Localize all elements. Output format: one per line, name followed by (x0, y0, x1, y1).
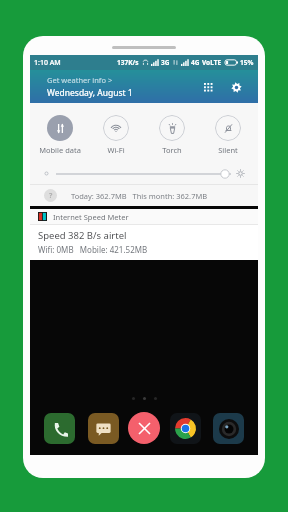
staticText: 1:10 AM (34, 58, 61, 68)
staticText: Today: 362.7MB This month: 362.7MB (71, 191, 208, 201)
staticText: Torch (162, 145, 182, 155)
button[interactable]: Messages (88, 413, 119, 444)
staticText: 3G (161, 58, 170, 67)
button[interactable]: Camera (213, 413, 244, 444)
staticText: Speed 382 B/s airtel (38, 229, 127, 242)
staticText: Internet Speed Meter (53, 212, 129, 222)
button[interactable]: Settings (228, 79, 244, 95)
staticText: Get weather info > (47, 75, 113, 85)
button[interactable]: Mobile data (34, 113, 86, 157)
button[interactable]: Brightness (56, 167, 231, 181)
staticText: Silent (218, 145, 238, 155)
staticText: VoLTE (202, 58, 222, 67)
staticText: 4G (191, 58, 200, 67)
button[interactable]: Torch (146, 113, 198, 157)
staticText: ? (49, 191, 53, 201)
staticText: Wednesday, August 1 (47, 87, 133, 99)
button[interactable]: Silent (202, 113, 254, 157)
button[interactable]: All settings (200, 79, 216, 95)
staticText: 137K/s (117, 58, 139, 67)
staticText: Wifi: 0MB Mobile: 421.52MB (38, 244, 148, 255)
button[interactable]: Wi-Fi (90, 113, 142, 157)
button[interactable]: Internet Speed Meter (30, 209, 258, 260)
button[interactable]: Phone (44, 413, 75, 444)
staticText: 15% (240, 58, 254, 67)
staticText: Wi-Fi (107, 145, 125, 155)
staticText: Mobile data (39, 145, 81, 155)
button[interactable]: Close (128, 412, 160, 444)
button[interactable]: Chrome (170, 413, 201, 444)
